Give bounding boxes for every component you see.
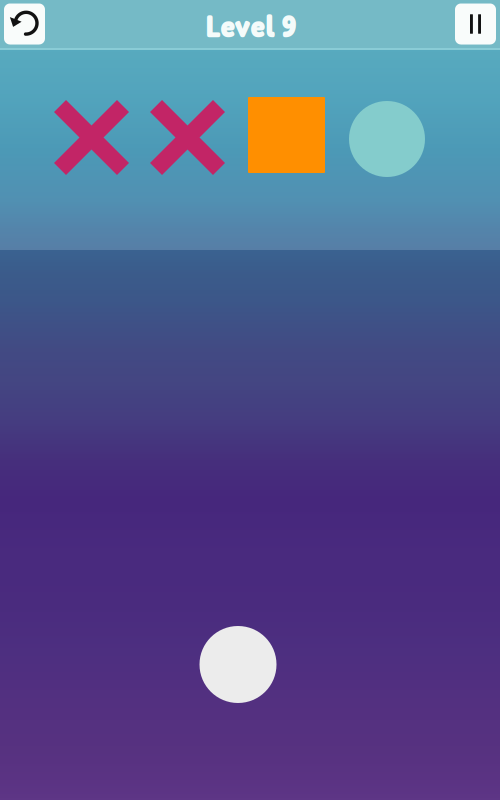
button[interactable]: Pause bbox=[455, 3, 496, 44]
staticText: Level 9 bbox=[205, 7, 296, 44]
button[interactable]: Restart level bbox=[4, 3, 45, 44]
